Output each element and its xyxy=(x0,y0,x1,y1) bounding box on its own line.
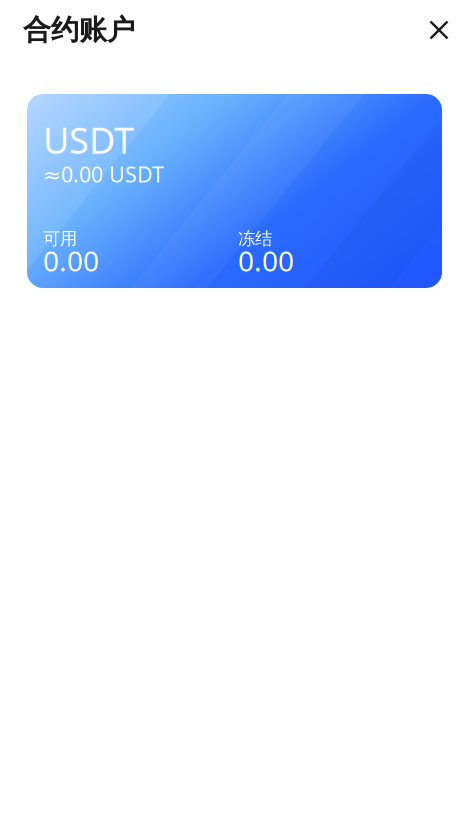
button[interactable]: Close xyxy=(419,10,459,50)
staticText: 合约账户 xyxy=(23,13,135,47)
staticText: 0.00 xyxy=(43,242,99,279)
staticText: ≈0.00 USDT xyxy=(43,160,164,188)
staticText: 冻结 xyxy=(238,228,272,249)
staticText: 可用 xyxy=(43,228,77,249)
staticText: USDT xyxy=(43,116,134,164)
staticText: 0.00 xyxy=(238,242,294,279)
